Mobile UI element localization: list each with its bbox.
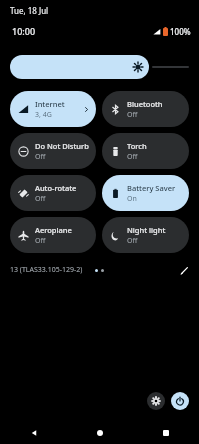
staticText: Bluetooth [127, 99, 163, 109]
staticText: Off [35, 194, 46, 204]
button[interactable]: Home [67, 422, 133, 444]
staticText: Do Not Disturb [35, 141, 89, 151]
staticText: Torch [127, 141, 147, 151]
staticText: Night light [127, 225, 166, 235]
button[interactable]: Recents [133, 422, 199, 444]
staticText: Off [35, 236, 46, 246]
button[interactable]: Bluetooth [102, 91, 189, 127]
button[interactable]: Settings [147, 392, 165, 410]
button[interactable]: Power [171, 392, 189, 410]
staticText: 13 (TLAS33.105-129-2) [10, 265, 83, 275]
staticText: Off [127, 152, 138, 162]
button[interactable]: Internet [10, 91, 96, 127]
staticText: Battery Saver [127, 183, 176, 193]
staticText: Aeroplane mode [35, 225, 90, 235]
staticText: Auto-rotate [35, 183, 77, 193]
staticText: 3, 4G [35, 110, 52, 120]
button[interactable]: Auto-rotate [10, 175, 96, 211]
button[interactable]: Brightness [10, 55, 149, 79]
staticText: On [127, 194, 137, 204]
button[interactable]: Battery Saver [102, 175, 189, 211]
button[interactable]: Torch [102, 133, 189, 169]
button[interactable]: Edit tiles [177, 263, 191, 277]
staticText: Internet [35, 99, 65, 109]
button[interactable]: Night light [102, 217, 189, 253]
staticText: Off [127, 110, 138, 120]
staticText: Off [127, 236, 138, 246]
staticText: Off [35, 152, 46, 162]
button[interactable]: Back [0, 422, 67, 444]
staticText: Tue, 18 Jul [10, 5, 49, 16]
button[interactable]: Aeroplane mode [10, 217, 96, 253]
staticText: 10:00 [12, 25, 36, 37]
staticText: 100% [170, 26, 191, 37]
button[interactable]: Do Not Disturb [10, 133, 96, 169]
